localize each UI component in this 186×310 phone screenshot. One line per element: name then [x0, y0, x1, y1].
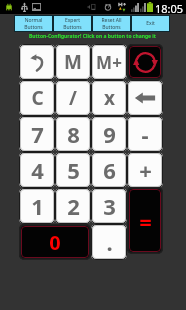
staticText: M+ [96, 51, 122, 74]
button[interactable]: 4 [19, 152, 55, 188]
staticText: x [104, 85, 115, 111]
button[interactable]: = [127, 187, 163, 254]
staticText: C [31, 85, 44, 111]
button[interactable]: Backspace [127, 80, 163, 116]
button[interactable]: 6 [91, 152, 127, 188]
button[interactable]: Reset All Buttons [92, 15, 131, 32]
staticText: Normal Buttons [24, 17, 43, 30]
button[interactable]: Exit [131, 15, 170, 32]
button[interactable]: M [55, 44, 91, 80]
staticText: Button-Configurator! Click on a button t… [29, 33, 157, 40]
button[interactable]: x [91, 80, 127, 116]
staticText: Expert Buttons [63, 17, 82, 30]
staticText: 18:05 [155, 1, 184, 15]
button[interactable]: 3 [91, 188, 127, 224]
staticText: Exit [146, 20, 155, 27]
staticText: - [141, 119, 149, 149]
button[interactable]: / [55, 80, 91, 116]
staticText: / [69, 85, 77, 111]
staticText: 4 [31, 155, 44, 185]
button[interactable]: Expert Buttons [53, 15, 92, 32]
staticText: M [64, 49, 82, 75]
button[interactable]: C [19, 80, 55, 116]
button[interactable]: 9 [91, 116, 127, 152]
staticText: 7 [31, 119, 44, 149]
staticText: 5 [67, 155, 80, 185]
button[interactable]: + [127, 152, 163, 188]
staticText: 2 [67, 191, 80, 221]
staticText: + [139, 155, 152, 185]
staticText: 6 [103, 155, 116, 185]
staticText: 9 [103, 119, 116, 149]
button[interactable]: 8 [55, 116, 91, 152]
button[interactable]: Undo [19, 44, 55, 80]
staticText: 1 [31, 191, 44, 221]
button[interactable]: 2 [55, 188, 91, 224]
staticText: 3 [103, 191, 116, 221]
button[interactable]: 1 [19, 188, 55, 224]
staticText: Reset All Buttons [101, 17, 122, 30]
button[interactable]: 0 [19, 224, 91, 260]
staticText: 0 [49, 229, 61, 256]
staticText: = [139, 206, 152, 236]
button[interactable]: 5 [55, 152, 91, 188]
button[interactable]: Normal Buttons [14, 15, 53, 32]
button[interactable]: M+ [91, 44, 127, 80]
button[interactable]: 7 [19, 116, 55, 152]
button[interactable]: Reset all [127, 44, 163, 80]
button[interactable]: . [91, 224, 127, 260]
staticText: . [106, 227, 113, 257]
button[interactable]: - [127, 116, 163, 152]
staticText: 8 [67, 119, 80, 149]
